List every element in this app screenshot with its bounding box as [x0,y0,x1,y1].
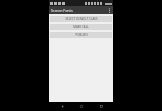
staticText: MAKE CALL [73,25,89,29]
button[interactable]: More options [106,6,113,14]
button[interactable]: Recents [94,102,108,111]
staticText: SELECT DEFAULT CLASS [65,17,98,21]
button[interactable]: MAKE CALL [50,24,112,30]
staticText: Screen Fonts [51,8,73,13]
button[interactable]: PUBLISH [50,32,112,38]
button[interactable]: Back [55,102,69,111]
staticText: PUBLISH [75,33,88,37]
button[interactable]: SELECT DEFAULT CLASS [50,16,112,22]
button[interactable]: Home [74,102,88,111]
